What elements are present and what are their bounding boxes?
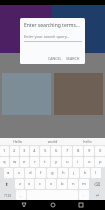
button[interactable]: q xyxy=(0,157,9,167)
button[interactable] xyxy=(52,5,105,53)
button[interactable]: e xyxy=(20,157,29,167)
button[interactable]: r xyxy=(30,157,39,167)
button[interactable]: Back xyxy=(19,200,29,210)
button[interactable]: Emoji xyxy=(16,190,26,200)
staticText: hello xyxy=(70,139,105,144)
staticText: world xyxy=(35,139,70,144)
button[interactable]: 3 xyxy=(20,146,29,156)
button[interactable]: c xyxy=(35,179,45,189)
staticText: x xyxy=(28,181,31,187)
staticText: g xyxy=(51,170,54,176)
staticText: c xyxy=(39,181,42,187)
staticText: 3 xyxy=(23,148,26,154)
button[interactable]: ?123 xyxy=(0,190,15,200)
button[interactable]: 5 xyxy=(40,146,50,156)
staticText: 0 xyxy=(99,148,102,154)
staticText: v xyxy=(50,181,53,187)
staticText: t xyxy=(44,159,46,165)
staticText: 7 xyxy=(66,148,69,154)
staticText: l xyxy=(95,170,97,176)
button[interactable]: 1 xyxy=(0,146,9,156)
staticText: z xyxy=(19,181,21,187)
staticText: o xyxy=(88,159,91,165)
button[interactable]: k xyxy=(80,168,90,178)
staticText: a xyxy=(7,170,10,176)
staticText: w xyxy=(13,159,17,165)
staticText: . xyxy=(83,192,85,198)
button[interactable]: u xyxy=(62,157,72,167)
staticText: k xyxy=(84,170,87,176)
staticText: q xyxy=(3,159,6,165)
button[interactable]: Enter xyxy=(90,190,105,200)
staticText: j xyxy=(73,170,75,176)
staticText: m xyxy=(82,181,86,187)
button[interactable]: x xyxy=(25,179,34,189)
staticText: 6 xyxy=(55,148,58,154)
staticText: i xyxy=(77,159,79,165)
button[interactable]: SEARCH xyxy=(64,54,82,63)
button[interactable]: p xyxy=(95,157,105,167)
staticText: ⌫ xyxy=(94,182,101,187)
button[interactable]: b xyxy=(57,179,67,189)
staticText: s xyxy=(18,170,21,176)
staticText: 1 xyxy=(3,148,6,154)
staticText: Hello xyxy=(0,139,35,144)
button[interactable]: Backspace xyxy=(90,179,105,189)
staticText: SEARCH xyxy=(66,56,80,61)
button[interactable]: n xyxy=(68,179,78,189)
button[interactable] xyxy=(0,5,52,53)
staticText: r xyxy=(34,159,36,165)
button[interactable]: Shift xyxy=(0,179,14,189)
staticText: Enter searching terms... xyxy=(24,22,80,29)
staticText: p xyxy=(99,159,102,165)
staticText: ?123 xyxy=(4,193,12,198)
button[interactable]: j xyxy=(69,168,79,178)
staticText: b xyxy=(61,181,64,187)
button[interactable]: 2 xyxy=(10,146,19,156)
button[interactable]: 8 xyxy=(73,146,83,156)
button[interactable]: g xyxy=(47,168,57,178)
staticText: n xyxy=(72,181,75,187)
staticText: u xyxy=(66,159,69,165)
button[interactable]: l xyxy=(91,168,101,178)
button[interactable]: h xyxy=(58,168,68,178)
staticText: ⬆ xyxy=(5,182,9,187)
button[interactable]: f xyxy=(36,168,46,178)
button[interactable]: Home xyxy=(48,200,58,210)
button[interactable]: CANCEL xyxy=(46,54,64,63)
button[interactable]: i xyxy=(73,157,83,167)
staticText: h xyxy=(62,170,65,176)
button[interactable]: m xyxy=(79,179,89,189)
button[interactable]: w xyxy=(10,157,19,167)
button[interactable]: z xyxy=(15,179,24,189)
staticText: d xyxy=(29,170,32,176)
button[interactable]: t xyxy=(40,157,50,167)
staticText: e xyxy=(23,159,26,165)
staticText: Enter your search query... xyxy=(24,34,70,39)
staticText: 9 xyxy=(88,148,91,154)
button[interactable]: v xyxy=(46,179,56,189)
staticText: ↵ xyxy=(96,193,100,198)
button[interactable]: 6 xyxy=(51,146,61,156)
button[interactable]: 4 xyxy=(30,146,39,156)
button[interactable]: 0 xyxy=(95,146,105,156)
button[interactable]: 7 xyxy=(62,146,72,156)
button[interactable]: 9 xyxy=(84,146,94,156)
button[interactable]: o xyxy=(84,157,94,167)
staticText: 2 xyxy=(13,148,16,154)
button[interactable]: . xyxy=(79,190,89,200)
button[interactable]: y xyxy=(51,157,61,167)
staticText: f xyxy=(40,170,42,176)
button[interactable]: d xyxy=(25,168,35,178)
button[interactable]: s xyxy=(14,168,24,178)
staticText: 5 xyxy=(44,148,47,154)
button[interactable]: a xyxy=(4,168,13,178)
staticText: , xyxy=(20,192,22,198)
staticText: CANCEL xyxy=(48,56,62,61)
staticText: 4 xyxy=(33,148,36,154)
button[interactable]: Recents xyxy=(76,200,86,210)
staticText: y xyxy=(55,159,58,165)
